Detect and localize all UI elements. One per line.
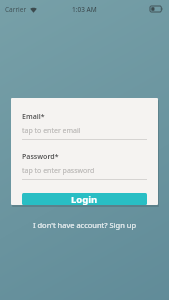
button[interactable]: Email* — [22, 112, 147, 140]
staticText: Carrier — [5, 5, 27, 14]
button[interactable]: Password* — [22, 152, 147, 180]
staticText: Email* — [22, 112, 45, 122]
button[interactable]: I don't have account? Sign up — [27, 218, 143, 232]
staticText: tap to enter email — [22, 126, 81, 136]
staticText: Password* — [22, 152, 59, 162]
staticText: tap to enter password — [22, 166, 95, 176]
staticText: 1:03 AM — [72, 5, 97, 14]
button[interactable]: Login — [22, 193, 147, 205]
staticText: Login — [71, 193, 98, 205]
